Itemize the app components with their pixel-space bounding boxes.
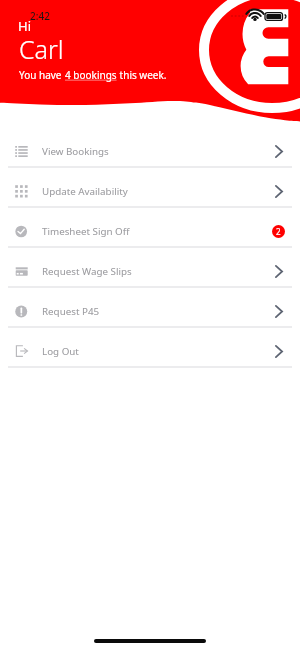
staticText: Log Out — [42, 345, 79, 358]
staticText: 2 — [276, 226, 281, 237]
button[interactable]: View Bookings — [0, 131, 300, 171]
button[interactable]: Request Wage Slips — [0, 251, 300, 291]
staticText: Request Wage Slips — [42, 265, 132, 278]
staticText: View Bookings — [42, 145, 109, 158]
button[interactable]: Update Availability — [0, 171, 300, 211]
staticText: Carl — [19, 32, 64, 66]
staticText: 2:42 — [30, 9, 50, 23]
staticText: Request P45 — [42, 305, 100, 318]
staticText: Update Availability — [42, 185, 128, 198]
button[interactable]: Timesheet Sign Off — [0, 211, 300, 251]
button[interactable]: Request P45 — [0, 291, 300, 331]
button[interactable]: Log Out — [0, 331, 300, 371]
staticText: this week. — [117, 68, 167, 82]
staticText: Hi — [18, 17, 31, 35]
staticText: Timesheet Sign Off — [42, 225, 130, 238]
staticText: 4 bookings — [65, 68, 117, 82]
staticText: You have — [19, 68, 65, 82]
